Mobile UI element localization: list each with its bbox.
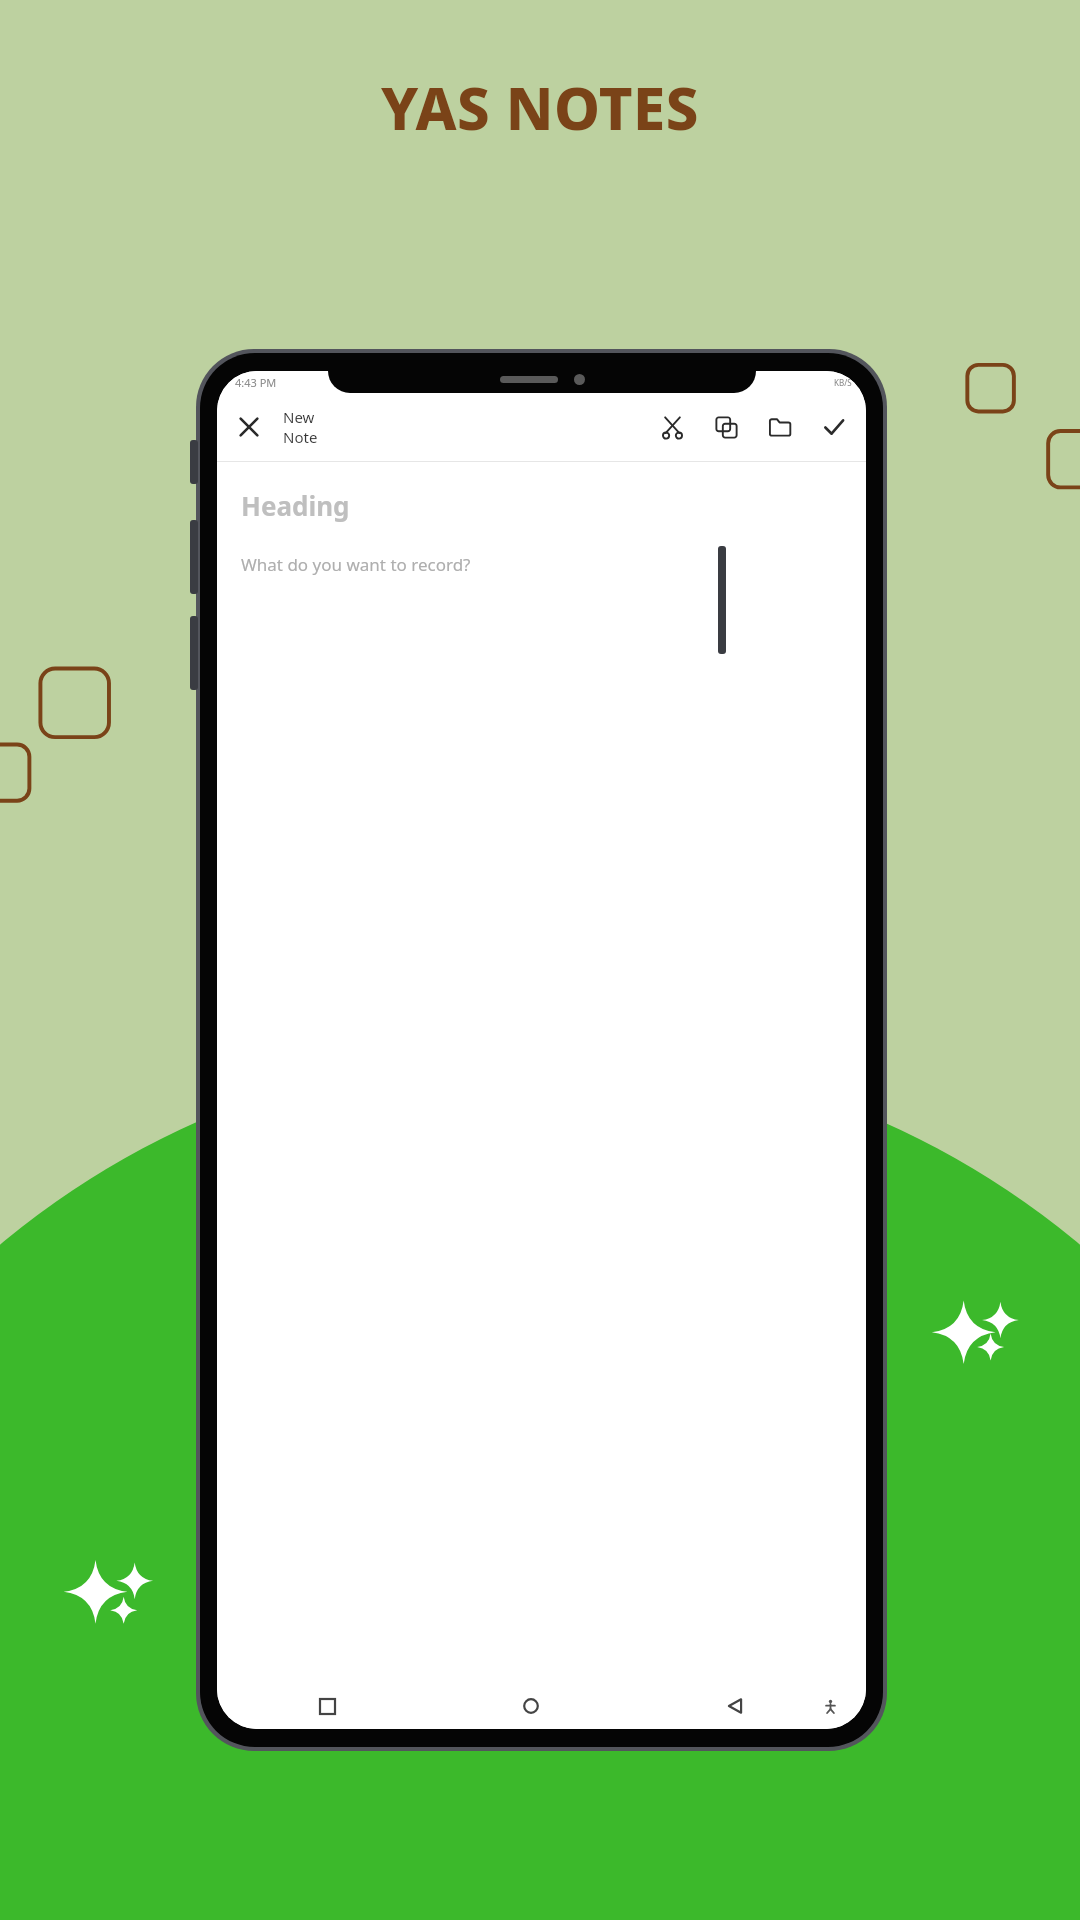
button[interactable]: Accessibility <box>813 1689 847 1723</box>
button[interactable]: What do you want to record? <box>241 553 866 1683</box>
button[interactable]: Save <box>812 405 856 449</box>
button[interactable]: New <box>283 407 318 447</box>
staticText: KB/S <box>834 377 852 388</box>
button[interactable]: Heading <box>241 488 866 523</box>
staticText: Note <box>283 427 318 447</box>
staticText: New <box>283 407 315 427</box>
button[interactable]: Close <box>227 405 271 449</box>
button[interactable]: Recent apps <box>306 1685 348 1727</box>
button[interactable]: Back <box>714 1685 756 1727</box>
staticText: What do you want to record? <box>241 553 471 576</box>
staticText: YAS NOTES <box>0 68 1080 147</box>
button[interactable]: Copy <box>704 405 748 449</box>
button[interactable]: Move to folder <box>758 405 802 449</box>
staticText: 4:43 PM <box>235 375 277 390</box>
button[interactable]: Home <box>510 1685 552 1727</box>
button[interactable]: Cut <box>650 405 694 449</box>
staticText: Heading <box>241 488 350 523</box>
